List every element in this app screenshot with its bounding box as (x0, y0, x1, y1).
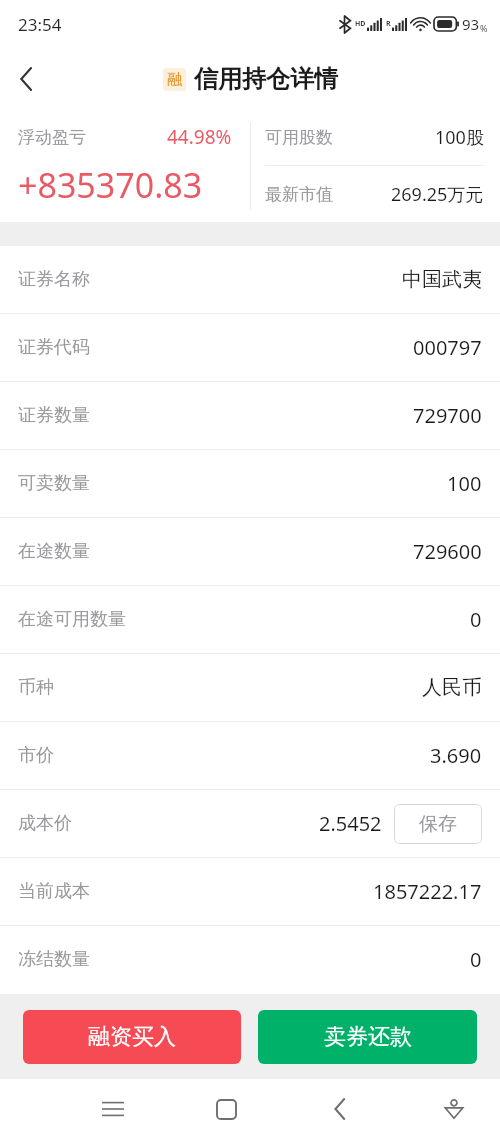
button[interactable]: 市价 (0, 722, 500, 789)
staticText: 23:54 (18, 13, 62, 36)
staticText: 卖券还款 (324, 1023, 412, 1051)
staticText: 000797 (413, 334, 482, 361)
staticText: 融 (167, 70, 182, 89)
button[interactable]: Back (312, 1081, 368, 1137)
staticText: 93 (462, 14, 480, 34)
staticText: 100 (447, 470, 482, 497)
button[interactable]: 在途可用数量 (0, 586, 500, 653)
staticText: 冻结数量 (18, 948, 90, 971)
staticText: 729700 (413, 402, 482, 429)
staticText: 币种 (18, 676, 54, 699)
staticText: HD (355, 19, 366, 29)
staticText: 成本价 (18, 812, 72, 835)
staticText: 在途数量 (18, 540, 90, 563)
button[interactable]: Home (198, 1081, 254, 1137)
staticText: 0 (470, 946, 482, 973)
staticText: 证券代码 (18, 336, 90, 359)
staticText: % (480, 22, 488, 34)
staticText: 3.690 (430, 742, 482, 769)
staticText: 0 (470, 606, 482, 633)
staticText: 当前成本 (18, 880, 90, 903)
button[interactable]: 证券代码 (0, 314, 500, 381)
button[interactable]: 成本价 (0, 790, 500, 857)
staticText: 市价 (18, 744, 54, 767)
staticText: 证券名称 (18, 268, 90, 291)
staticText: 中国武夷 (402, 267, 482, 292)
staticText: 可用股数 (265, 127, 333, 148)
button[interactable]: 币种 (0, 654, 500, 721)
button[interactable]: Back (0, 53, 52, 105)
staticText: 269.25万元 (391, 182, 484, 207)
button[interactable]: 证券数量 (0, 382, 500, 449)
button[interactable]: 保存 (394, 804, 482, 844)
staticText: 2.5452 (319, 810, 382, 837)
staticText: 保存 (419, 812, 457, 836)
button[interactable]: 卖券还款 (258, 1010, 477, 1064)
staticText: 融资买入 (88, 1023, 176, 1051)
button[interactable]: 在途数量 (0, 518, 500, 585)
staticText: 729600 (413, 538, 482, 565)
staticText: 信用持仓详情 (194, 64, 338, 94)
staticText: 可卖数量 (18, 472, 90, 495)
staticText: 人民币 (422, 675, 482, 700)
staticText: 100股 (435, 125, 484, 150)
button[interactable]: Menu (85, 1081, 141, 1137)
staticText: R (386, 19, 391, 29)
button[interactable]: Assistant (426, 1081, 482, 1137)
staticText: 证券数量 (18, 404, 90, 427)
button[interactable]: 证券名称 (0, 246, 500, 313)
button[interactable]: 可卖数量 (0, 450, 500, 517)
button[interactable]: 当前成本 (0, 858, 500, 925)
staticText: 在途可用数量 (18, 608, 126, 631)
staticText: 1857222.17 (373, 878, 482, 905)
staticText: +835370.83 (18, 162, 203, 208)
button[interactable]: 冻结数量 (0, 926, 500, 993)
staticText: 浮动盈亏 (18, 127, 86, 148)
staticText: 44.98% (167, 124, 232, 150)
button[interactable]: 融资买入 (23, 1010, 241, 1064)
staticText: 最新市值 (265, 184, 333, 205)
